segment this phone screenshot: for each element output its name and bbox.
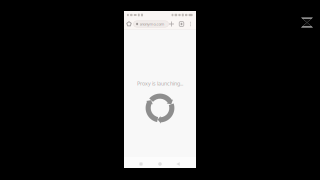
button[interactable]: Recent apps bbox=[134, 158, 148, 169]
button[interactable]: Tabs bbox=[177, 19, 186, 29]
staticText: anonymo.com bbox=[139, 21, 164, 27]
button[interactable]: Home bbox=[125, 19, 133, 29]
button[interactable]: Home bbox=[153, 158, 167, 169]
button[interactable]: Back bbox=[171, 158, 185, 169]
button[interactable]: New tab bbox=[167, 19, 176, 29]
button[interactable]: More options bbox=[187, 19, 194, 29]
staticText: Proxy is launching... bbox=[137, 80, 183, 87]
button[interactable]: Address bar bbox=[133, 21, 168, 27]
